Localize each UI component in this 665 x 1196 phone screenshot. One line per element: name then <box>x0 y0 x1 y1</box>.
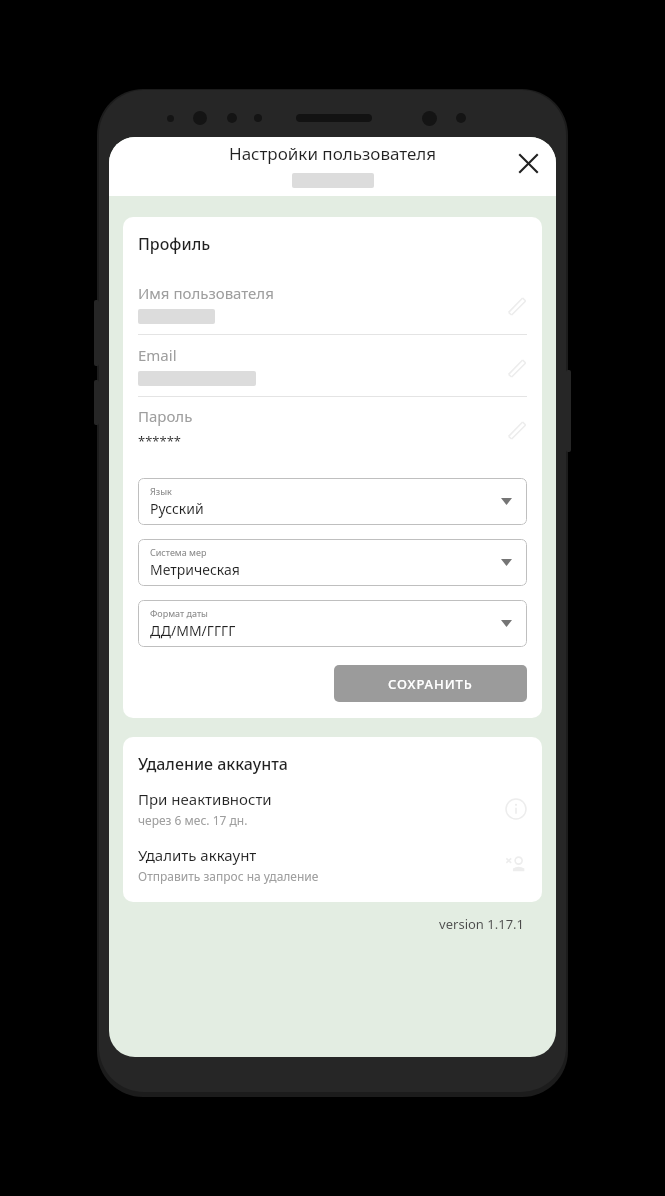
staticText: через 6 мес. 17 дн. <box>138 812 248 828</box>
button[interactable]: Email <box>138 335 527 396</box>
staticText: Настройки пользователя <box>229 142 437 165</box>
staticText: Язык <box>150 485 172 497</box>
button[interactable]: СОХРАНИТЬ <box>334 665 527 702</box>
button[interactable]: Имя пользователя <box>138 273 527 334</box>
staticText: Имя пользователя <box>138 283 274 303</box>
staticText: Профиль <box>138 233 211 255</box>
staticText: Удаление аккаунта <box>138 753 288 775</box>
staticText: ДД/ММ/ГГГГ <box>150 621 236 640</box>
staticText: СОХРАНИТЬ <box>388 675 473 693</box>
staticText: version 1.17.1 <box>109 915 524 933</box>
staticText: Отправить запрос на удаление <box>138 868 319 884</box>
staticText: ****** <box>138 432 181 450</box>
staticText: Email <box>138 345 177 365</box>
button[interactable]: Пароль <box>138 397 527 458</box>
button[interactable]: Информация <box>138 789 527 828</box>
staticText: Удалить аккаунт <box>138 845 257 865</box>
button[interactable]: Формат даты <box>138 600 527 647</box>
button[interactable]: Закрыть <box>508 143 548 183</box>
staticText: Формат даты <box>150 607 208 619</box>
staticText: Пароль <box>138 406 193 426</box>
staticText: При неактивности <box>138 789 272 809</box>
staticText: Система мер <box>150 546 207 558</box>
staticText: Русский <box>150 499 204 518</box>
staticText: Метрическая <box>150 560 240 579</box>
button[interactable]: Удалить аккаунт <box>138 845 527 884</box>
button[interactable]: Система мер <box>138 539 527 586</box>
button[interactable]: Язык <box>138 478 527 525</box>
